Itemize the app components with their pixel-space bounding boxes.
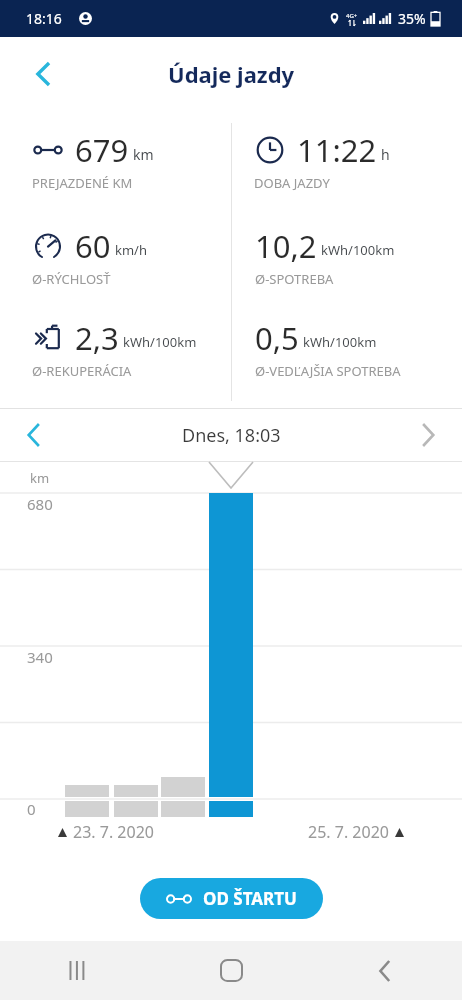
staticText: 60 <box>75 225 111 267</box>
staticText: 0,5 <box>255 317 299 359</box>
staticText: 23. 7. 2020 <box>73 821 154 843</box>
staticText: 680 <box>27 494 53 514</box>
staticText: 679 <box>75 129 129 171</box>
staticText: km <box>30 469 50 487</box>
staticText: DOBA JAZDY <box>254 174 330 192</box>
button[interactable]: Back <box>22 52 66 96</box>
button[interactable]: 11:22 <box>231 111 462 210</box>
button[interactable]: Next <box>406 413 450 457</box>
staticText: Dnes, 18:03 <box>182 423 281 448</box>
staticText: kWh/100km <box>303 333 377 351</box>
button[interactable]: Back <box>308 941 462 1000</box>
button[interactable]: 679 <box>0 111 231 210</box>
staticText: Ø-REKUPERÁCIA <box>32 362 132 380</box>
staticText: kWh/100km <box>321 241 395 259</box>
staticText: 35% <box>398 9 426 28</box>
staticText: 0 <box>27 799 36 819</box>
staticText: PREJAZDENÉ KM <box>32 174 133 192</box>
staticText: 2,3 <box>75 317 119 359</box>
button[interactable]: 10,2 <box>231 210 462 302</box>
staticText: Ø-SPOTREBA <box>255 270 334 288</box>
staticText: 4G+ <box>346 12 358 20</box>
button[interactable]: 0,5 <box>231 302 462 394</box>
staticText: km/h <box>115 241 147 259</box>
staticText: kWh/100km <box>123 333 197 351</box>
staticText: OD ŠTARTU <box>203 887 297 910</box>
staticText: Údaje jazdy <box>168 59 295 89</box>
button[interactable]: 60 <box>0 210 231 302</box>
button[interactable]: OD ŠTARTU <box>140 878 323 919</box>
button[interactable]: Previous <box>12 413 56 457</box>
staticText: Ø-RÝCHLOSŤ <box>32 270 111 288</box>
staticText: 18:16 <box>26 9 62 28</box>
staticText: h <box>381 145 390 164</box>
staticText: Ø-VEDĽAJŠIA SPOTREBA <box>255 362 401 380</box>
staticText: 340 <box>27 647 53 667</box>
button[interactable]: Home <box>154 941 308 1000</box>
button[interactable]: Recents <box>0 941 154 1000</box>
button[interactable]: 2,3 <box>0 302 231 394</box>
staticText: 11:22 <box>297 129 377 171</box>
staticText: km <box>133 145 154 164</box>
staticText: 10,2 <box>255 225 317 267</box>
staticText: 25. 7. 2020 <box>308 821 389 843</box>
